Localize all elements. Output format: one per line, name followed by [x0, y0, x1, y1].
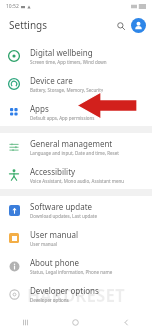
staticText: Voice Assistant, Mono audio, Assistant m… — [30, 178, 125, 184]
staticText: Battery, Storage, Memory, Security — [30, 87, 104, 93]
staticText: Language and input, Date and time, Reset — [30, 150, 119, 156]
staticText: Settings — [9, 18, 48, 32]
staticText: Default apps, App permissions — [30, 115, 95, 121]
staticText: Digital wellbeing — [30, 47, 93, 58]
button[interactable]: Home — [50, 313, 101, 331]
button[interactable]: Apps — [0, 98, 152, 126]
button[interactable]: Device care — [0, 70, 152, 98]
button[interactable]: Accessibility — [0, 161, 152, 189]
button[interactable]: Recents — [0, 313, 50, 331]
staticText: Developer options — [30, 285, 99, 296]
button[interactable]: Software update — [0, 196, 152, 224]
button[interactable]: About phone — [0, 252, 152, 280]
button[interactable]: User manual — [0, 224, 152, 252]
staticText: Device care — [30, 75, 73, 86]
staticText: User manual — [30, 229, 78, 240]
staticText: HARDRESET — [27, 284, 125, 307]
staticText: General management — [30, 138, 113, 149]
button[interactable]: General management — [0, 133, 152, 161]
staticText: 10:52 — [6, 3, 19, 10]
staticText: Screen time, App timers, Wind down — [30, 59, 107, 65]
staticText: User manual — [30, 241, 57, 247]
staticText: Developer options — [30, 297, 69, 303]
staticText: Download updates, Last update — [30, 213, 97, 219]
staticText: Accessibility — [30, 166, 76, 177]
staticText: About phone — [30, 257, 79, 268]
button[interactable]: Digital wellbeing — [0, 42, 152, 70]
button[interactable]: Developer options — [0, 280, 152, 308]
staticText: Apps — [30, 103, 49, 114]
staticText: Software update — [30, 201, 93, 212]
staticText: Status, Legal information, Phone name — [30, 269, 113, 275]
button[interactable]: Account — [131, 18, 146, 33]
button[interactable]: Back — [101, 313, 152, 331]
button[interactable]: Search — [113, 18, 128, 33]
